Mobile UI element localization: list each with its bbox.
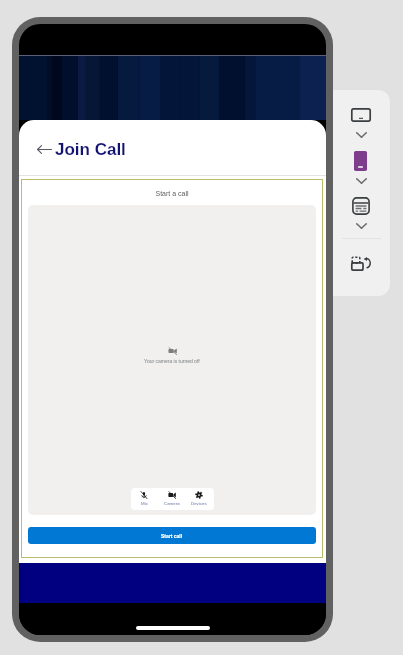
- button[interactable]: Phone device: [352, 149, 369, 173]
- staticText: Mic: [141, 501, 148, 506]
- button[interactable]: Expand: [351, 219, 371, 233]
- button[interactable]: Devices: [187, 488, 211, 510]
- staticText: Devices: [191, 501, 207, 506]
- staticText: Start a call: [21, 190, 323, 198]
- button[interactable]: Camera: [160, 488, 184, 510]
- staticText: Your camera is turned off: [144, 358, 200, 364]
- button[interactable]: Rotate: [349, 254, 373, 273]
- button[interactable]: Back: [34, 140, 55, 159]
- button[interactable]: Tablet device: [349, 106, 373, 124]
- button[interactable]: Desktop device: [350, 195, 372, 217]
- staticText: Camera: [164, 501, 180, 506]
- button[interactable]: Mic: [132, 488, 156, 510]
- staticText: Join Call: [55, 140, 126, 159]
- staticText: Start call: [161, 533, 183, 539]
- button[interactable]: Start call: [28, 527, 316, 544]
- button[interactable]: Expand: [351, 128, 371, 142]
- button[interactable]: Expand: [351, 174, 371, 188]
